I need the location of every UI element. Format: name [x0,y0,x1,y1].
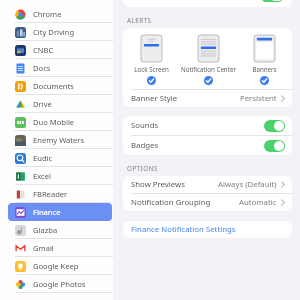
button[interactable]: Glazba [0,221,113,239]
staticText: Chrome [33,9,62,19]
button[interactable]: Sounds [123,116,292,135]
button[interactable]: Show Previews [123,176,292,193]
staticText: Sounds [131,120,159,131]
staticText: Docs [33,63,51,73]
button[interactable]: Badges [123,136,292,155]
staticText: Banner Style [131,93,178,104]
staticText: Google Photos [33,279,86,289]
button[interactable]: Duo Mobile [0,113,113,131]
button[interactable]: FBReader [0,185,113,203]
button[interactable]: Finance Notification Settings [123,221,292,238]
button[interactable]: Documents [0,77,113,95]
button[interactable]: Lock Screen [123,35,179,85]
staticText: Drive [33,99,52,109]
staticText: Eudic [33,153,53,163]
staticText: Duo Mobile [33,117,75,127]
staticText: OPTIONS [127,164,158,173]
staticText: Banners [252,65,277,73]
staticText: Excel [33,171,51,181]
staticText: ALERTS [127,16,152,25]
button[interactable]: Excel [0,167,113,185]
staticText: Finance Notification Settings [131,224,236,235]
button[interactable]: Google Photos [0,275,113,293]
button[interactable]: Docs [0,59,113,77]
staticText: CNBC [33,45,54,55]
staticText: Enemy Waters [33,135,85,145]
staticText: Google Keep [33,261,79,271]
button[interactable]: Gmail [0,239,113,257]
button[interactable]: Banners [236,35,292,85]
staticText: Show Previews [131,179,185,190]
staticText: Notification Grouping [131,197,211,208]
button[interactable]: Banner Style [123,90,292,107]
staticText: Finance [33,207,61,217]
button[interactable]: Finance [0,203,113,221]
button[interactable]: Drive [0,95,113,113]
button[interactable]: CNBC [0,41,113,59]
staticText: Persistent [240,93,277,104]
button[interactable]: Notification Grouping [123,194,292,211]
staticText: Always (Default) [218,179,277,190]
staticText: Badges [131,140,159,151]
button[interactable]: Notification Center [180,35,236,85]
staticText: Documents [33,81,74,91]
button[interactable]: Google Keep [0,257,113,275]
button[interactable]: City Driving [0,23,113,41]
staticText: City Driving [33,27,75,37]
staticText: FBReader [33,189,68,199]
staticText: Notification Center [181,65,236,73]
staticText: Automatic [239,197,277,208]
button[interactable]: Enemy Waters [0,131,113,149]
staticText: Gmail [33,243,54,253]
button[interactable]: Chrome [0,5,113,23]
button[interactable]: Eudic [0,149,113,167]
staticText: Lock Screen [134,65,169,73]
staticText: Glazba [33,225,58,235]
